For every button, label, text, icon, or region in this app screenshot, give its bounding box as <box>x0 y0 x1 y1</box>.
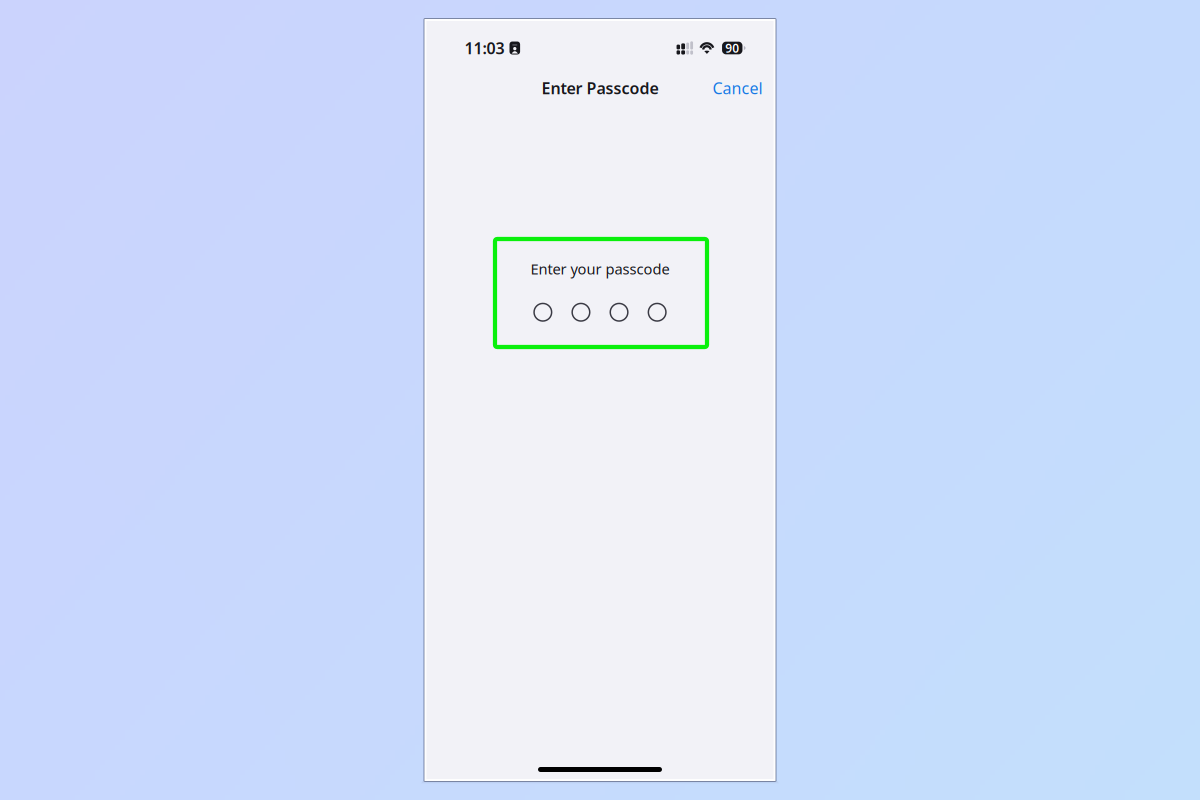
button[interactable]: Enter your passcode <box>530 259 669 327</box>
staticText: Enter Passcode <box>541 77 658 99</box>
button[interactable]: Cancel <box>708 69 766 107</box>
staticText: Enter your passcode <box>530 259 669 278</box>
staticText: 11:03 <box>464 37 504 59</box>
staticText: Cancel <box>712 77 762 99</box>
staticText: 90 <box>725 40 739 56</box>
